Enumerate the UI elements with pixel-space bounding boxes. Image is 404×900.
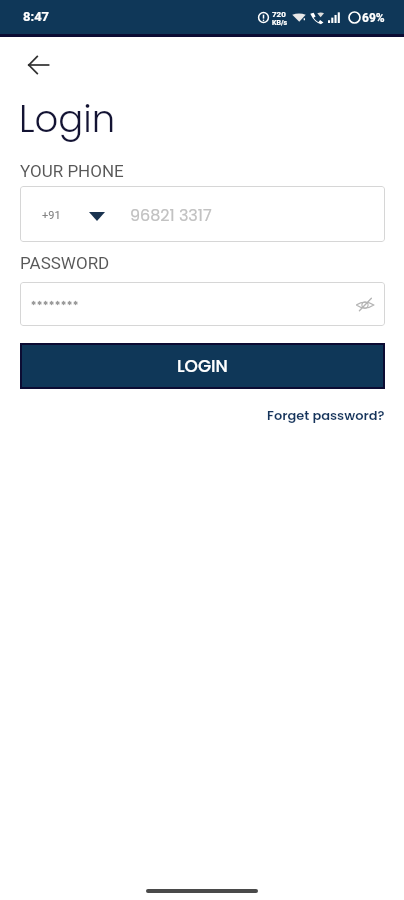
button[interactable]: Show password <box>352 291 378 317</box>
button[interactable]: Forget password? <box>250 406 385 424</box>
button[interactable]: Show password <box>20 282 385 326</box>
staticText: +91 <box>42 209 61 222</box>
staticText: Forget password? <box>267 406 385 424</box>
button[interactable]: Select country code <box>81 194 113 234</box>
staticText: YOUR PHONE <box>20 161 124 181</box>
button[interactable]: LOGIN <box>22 345 383 387</box>
staticText: 8:47 <box>23 9 50 24</box>
staticText: 96821 3317 <box>130 204 212 226</box>
staticText: 720 <box>272 10 286 19</box>
button[interactable]: Back <box>14 41 62 89</box>
staticText: KB/s <box>272 19 288 27</box>
staticText: LOGIN <box>177 354 228 378</box>
staticText: Login <box>19 93 116 145</box>
staticText: 69% <box>362 11 385 25</box>
staticText: PASSWORD <box>20 253 110 273</box>
button[interactable]: +91 <box>20 186 385 242</box>
